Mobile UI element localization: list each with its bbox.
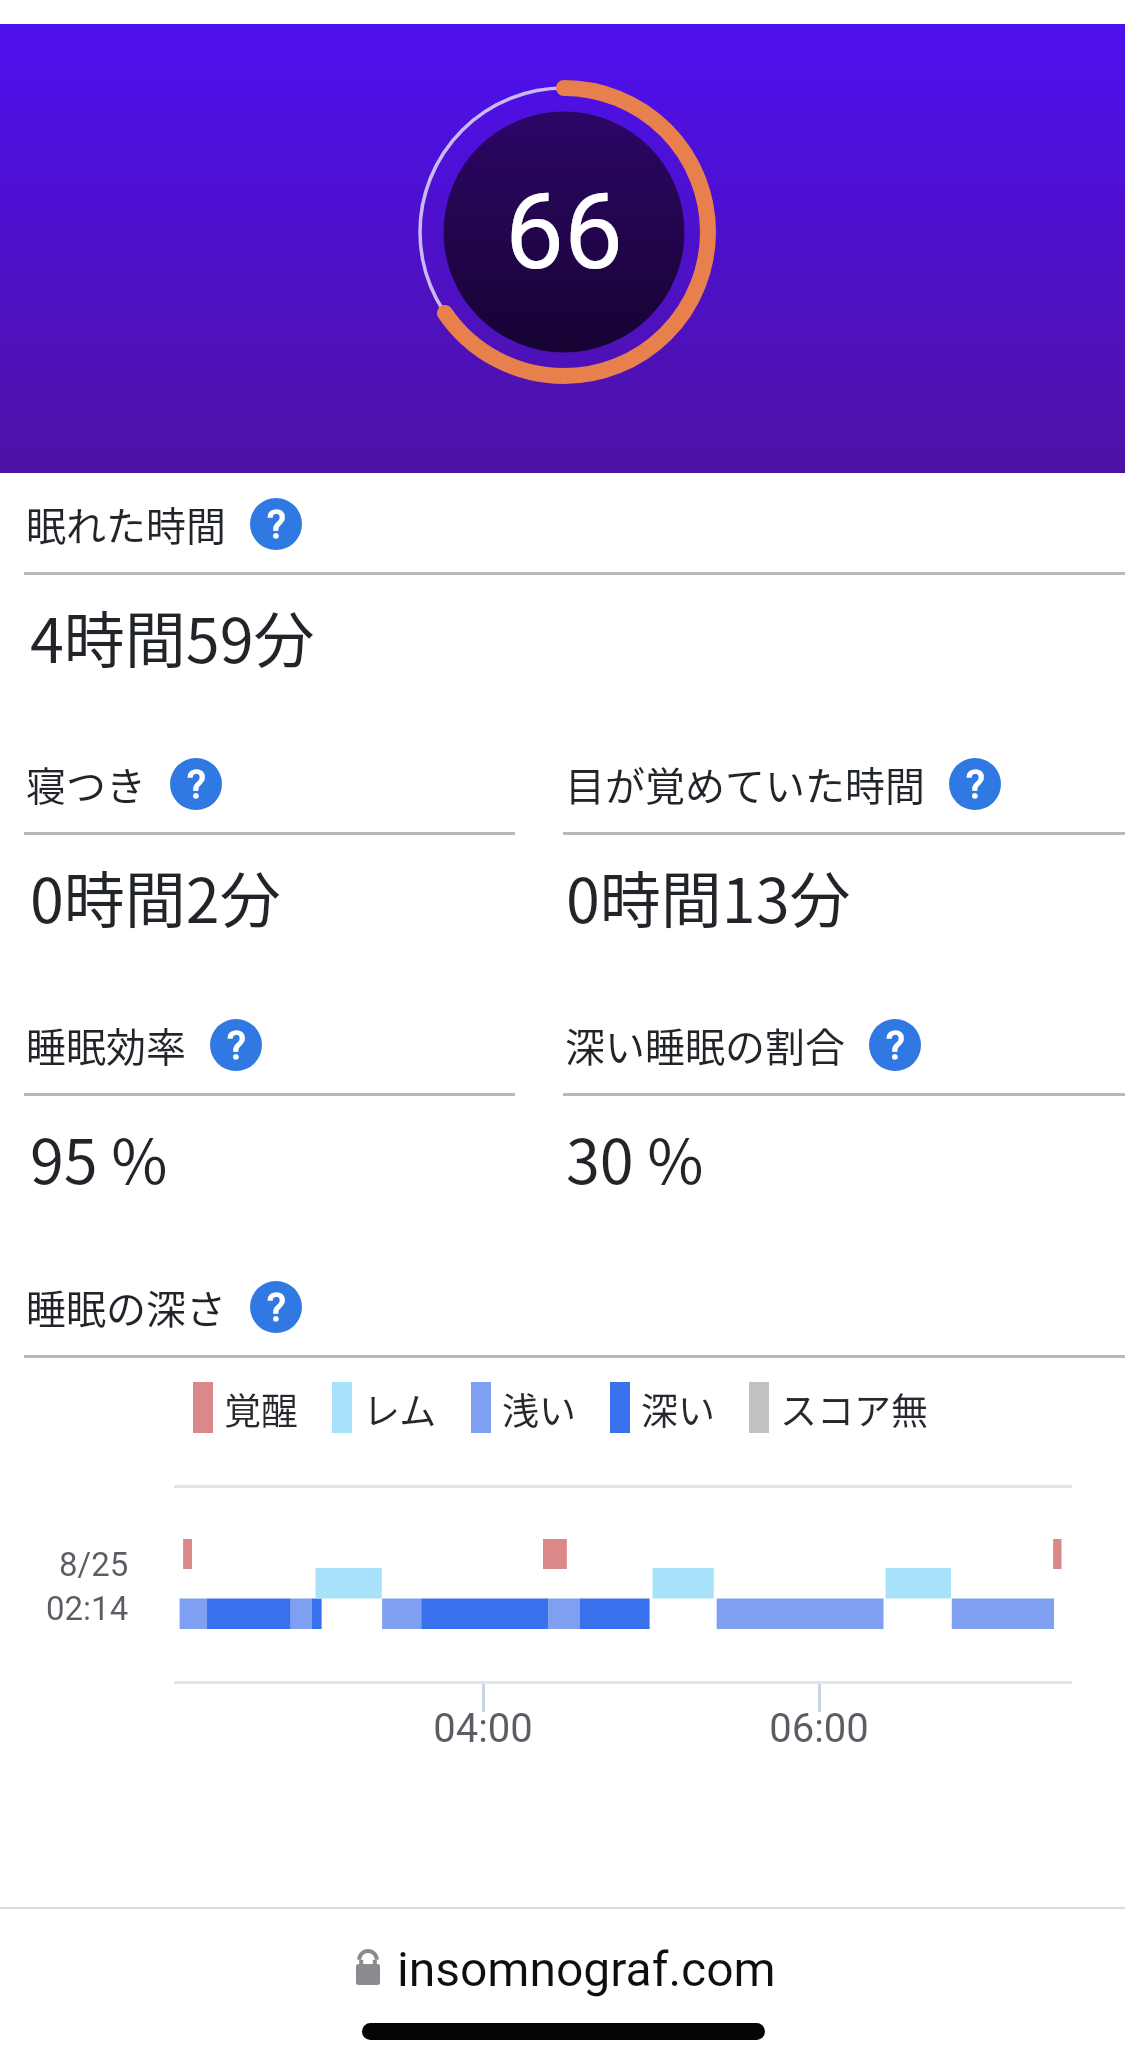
staticText: 4時間59分 [30,592,315,680]
staticText: 04:00 [403,1705,563,1752]
staticText: ? [886,1022,905,1068]
button[interactable]: Help [210,1019,262,1071]
button[interactable]: 睡眠効率 [26,1016,262,1074]
staticText: 眠れた時間 [26,495,226,553]
button[interactable]: 深い睡眠の割合 [565,1016,921,1074]
staticText: 寝つき [26,755,146,813]
staticText: ? [227,1022,246,1068]
staticText: スコア無 [780,1382,928,1436]
button[interactable]: Help [250,498,302,550]
staticText: 覚醒 [224,1382,298,1436]
button[interactable]: スコア無 [749,1382,928,1436]
button[interactable]: Help [170,758,222,810]
button[interactable]: 深い [610,1382,715,1436]
staticText: 0時間2分 [30,852,281,940]
staticText: 66 [505,171,624,294]
button[interactable]: 眠れた時間 [26,495,302,553]
staticText: レム [363,1382,437,1436]
staticText: ? [966,761,985,807]
staticText: ? [267,501,286,547]
button[interactable]: 浅い [471,1382,576,1436]
button[interactable]: 睡眠の深さ [26,1278,302,1336]
staticText: 浅い [502,1382,576,1436]
button[interactable]: Help [250,1281,302,1333]
button[interactable]: Help [949,758,1001,810]
staticText: 30 % [566,1113,704,1201]
button[interactable]: 寝つき [26,755,222,813]
button[interactable]: レム [332,1382,437,1436]
staticText: 目が覚めていた時間 [565,755,925,813]
button[interactable]: 覚醒 [193,1382,298,1436]
button[interactable]: 目が覚めていた時間 [565,755,1001,813]
staticText: 0時間13分 [566,852,851,940]
staticText: 06:00 [739,1705,899,1752]
staticText: 02:14 [46,1589,129,1628]
staticText: 8/25 [59,1545,129,1584]
other: Secure connection [356,1949,380,1985]
staticText: 睡眠の深さ [26,1278,226,1336]
staticText: ? [267,1284,286,1330]
staticText: 95 % [30,1113,168,1201]
staticText: ? [187,761,206,807]
staticText: 睡眠効率 [26,1016,186,1074]
staticText: insomnograf.com [397,1941,776,1997]
button[interactable]: Help [869,1019,921,1071]
staticText: 深い睡眠の割合 [565,1016,845,1074]
staticText: 深い [641,1382,715,1436]
